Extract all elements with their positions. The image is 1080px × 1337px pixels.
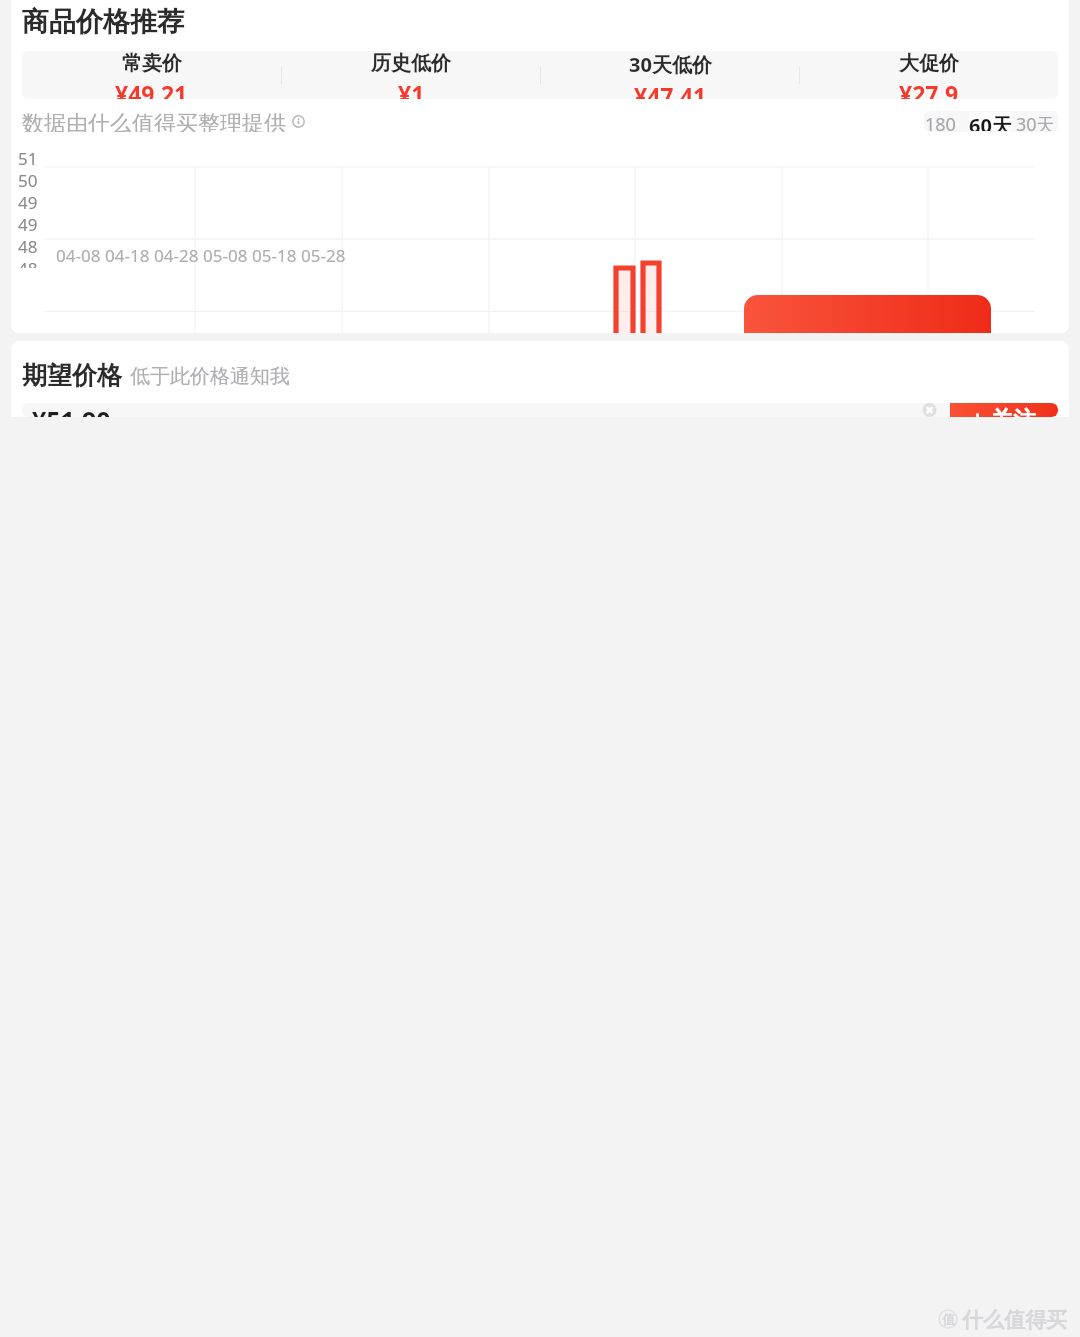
button[interactable]: + 关注 xyxy=(950,403,1058,417)
button[interactable]: 说明 xyxy=(292,115,305,128)
staticText: 48 xyxy=(18,257,38,268)
staticText: 数据由什么值得买整理提供 xyxy=(22,110,286,132)
button[interactable]: 清除 xyxy=(921,403,938,417)
staticText: 30天低价 xyxy=(629,51,712,78)
staticText: 低于此价格通知我 xyxy=(130,364,290,389)
button[interactable]: 180天 xyxy=(925,112,967,131)
button[interactable]: 大促价 xyxy=(800,51,1058,99)
button[interactable]: 历史低价 xyxy=(282,51,540,99)
staticText: 05-08 xyxy=(203,244,248,267)
staticText: 05-18 xyxy=(252,244,297,267)
staticText: 48 xyxy=(18,235,38,257)
staticText: 大促价 xyxy=(899,51,959,76)
staticText: 什么值得买 xyxy=(962,1307,1067,1331)
staticText: 49 xyxy=(18,191,38,213)
staticText: ¥1 xyxy=(398,78,425,99)
staticText: 常卖价 xyxy=(122,51,182,76)
staticText: 商品价格推荐 xyxy=(22,5,184,39)
staticText: 30天 xyxy=(1016,112,1055,131)
staticText: ¥47.41 xyxy=(634,80,707,99)
button[interactable]: ¥51.90 xyxy=(22,403,950,417)
button[interactable]: 30天 xyxy=(1014,112,1057,131)
button[interactable]: 30天低价 xyxy=(541,51,799,99)
staticText: ¥27.9 xyxy=(899,78,959,99)
button[interactable]: 常卖价 xyxy=(22,51,281,99)
staticText: 04-28 xyxy=(154,244,199,267)
staticText: 60天 xyxy=(969,112,1012,131)
staticText: 50 xyxy=(18,169,38,191)
staticText: 04-18 xyxy=(105,244,150,267)
staticText: ¥51.90 xyxy=(32,403,111,417)
staticText: ¥49.21 xyxy=(115,78,188,99)
staticText: 历史低价 xyxy=(371,51,451,76)
staticText: 51 xyxy=(18,147,38,169)
staticText: 期望价格 xyxy=(22,360,122,391)
staticText: 05-28 xyxy=(301,244,346,267)
staticText: + 关注 xyxy=(971,403,1037,417)
button[interactable]: 60天 xyxy=(969,112,1012,131)
staticText: 04-08 xyxy=(56,244,101,267)
staticText: 180天 xyxy=(925,112,967,131)
staticText: 值 xyxy=(942,1311,955,1327)
staticText: 49 xyxy=(18,213,38,235)
